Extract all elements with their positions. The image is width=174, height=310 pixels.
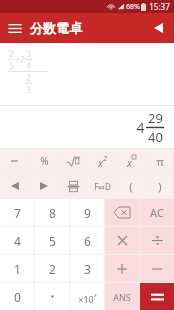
staticText: ) (158, 179, 162, 194)
staticText: 15:37 (149, 1, 170, 12)
button[interactable]: Move left (0, 174, 29, 198)
button[interactable]: Decimal point (35, 283, 69, 310)
staticText: 4 (14, 233, 21, 249)
button[interactable]: 5 (35, 227, 69, 254)
button[interactable]: % (30, 149, 58, 173)
button[interactable]: Multiply (105, 227, 139, 254)
button[interactable]: Equals (140, 283, 174, 310)
button[interactable]: 3 (70, 255, 104, 282)
button[interactable]: ANS (105, 283, 139, 310)
staticText: 6 (84, 233, 91, 249)
button[interactable]: Backspace (105, 199, 139, 226)
button[interactable]: ( (117, 174, 145, 198)
button[interactable]: Square (88, 149, 116, 173)
button[interactable]: 9 (70, 199, 104, 226)
button[interactable]: Fraction (59, 174, 87, 198)
staticText: F⇔D (94, 181, 111, 192)
button[interactable]: Negative (0, 149, 29, 173)
button[interactable]: 4 (0, 227, 34, 254)
button[interactable]: Plus (105, 255, 139, 282)
staticText: 4 (26, 60, 31, 71)
button[interactable]: F⇔D (88, 174, 116, 198)
staticText: x (127, 156, 132, 170)
button[interactable]: 2 (35, 255, 69, 282)
staticText: 5 (49, 233, 56, 249)
staticText: 2 (103, 154, 107, 164)
staticText: ×10 (78, 293, 94, 305)
staticText: 0 (14, 289, 21, 305)
button[interactable]: Move right (30, 174, 58, 198)
staticText: AC (150, 205, 164, 220)
staticText: 68% (126, 2, 140, 12)
staticText: x (98, 156, 103, 170)
staticText: 2 (49, 261, 56, 277)
button[interactable]: Times ten to the power (70, 283, 104, 310)
staticText: π (156, 154, 164, 169)
staticText: 2 (26, 72, 31, 83)
button[interactable]: 8 (35, 199, 69, 226)
staticText: 分数電卓 (30, 20, 82, 36)
staticText: x (94, 291, 97, 299)
button[interactable]: AC (140, 199, 174, 226)
staticText: ( (129, 179, 133, 194)
button[interactable]: 6 (70, 227, 104, 254)
staticText: 8 (49, 205, 56, 221)
button[interactable]: Power (117, 149, 145, 173)
staticText: 3 (26, 48, 31, 59)
button[interactable]: 1 (0, 255, 34, 282)
staticText: 4 (136, 118, 145, 137)
staticText: 1 (14, 261, 21, 277)
staticText: 9 (84, 205, 91, 221)
button[interactable]: 7 (0, 199, 34, 226)
button[interactable]: Back (148, 18, 168, 38)
staticText: 29 (148, 109, 163, 127)
staticText: 7 (14, 205, 21, 221)
button[interactable]: 0 (0, 283, 34, 310)
staticText: 2 (20, 54, 25, 65)
staticText: + (15, 54, 20, 65)
staticText: ANS (113, 291, 131, 303)
button[interactable]: Divide (140, 227, 174, 254)
staticText: % (40, 154, 49, 168)
staticText: 5 (9, 60, 14, 71)
button[interactable]: ) (146, 174, 174, 198)
button[interactable]: Menu (5, 18, 25, 38)
button[interactable]: π (146, 149, 174, 173)
staticText: 3 (26, 84, 31, 95)
staticText: 2 (9, 48, 14, 59)
button[interactable]: Minus (140, 255, 174, 282)
staticText: 40 (148, 128, 163, 146)
button[interactable]: Square root (59, 149, 87, 173)
staticText: 3 (84, 261, 91, 277)
